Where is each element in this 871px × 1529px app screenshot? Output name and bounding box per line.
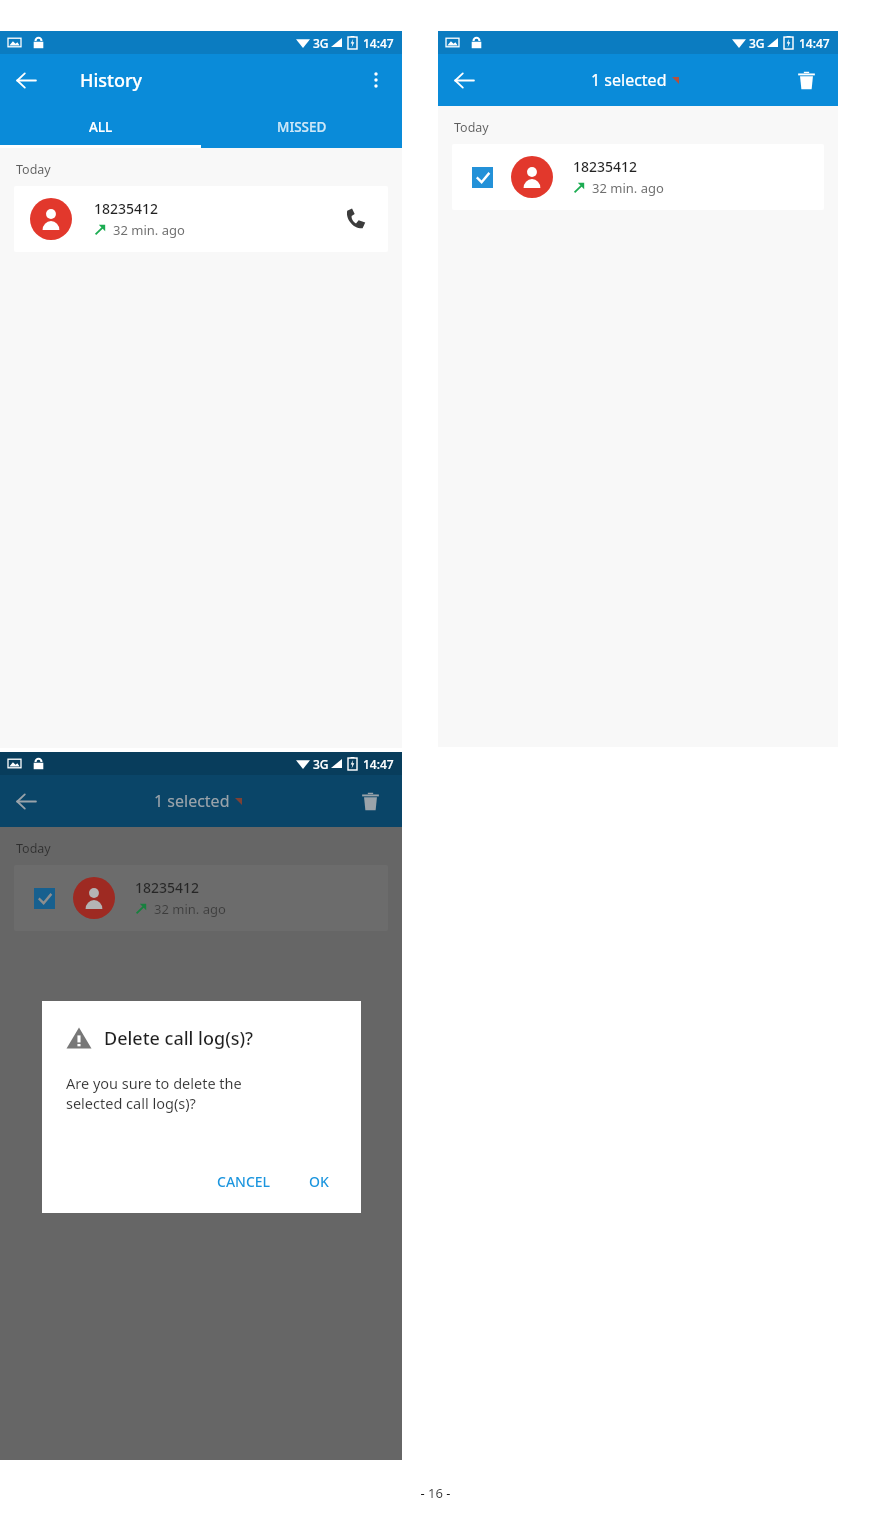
button[interactable]: ALL: [0, 106, 201, 148]
staticText: 14:47: [799, 35, 830, 51]
staticText: Delete call log(s)?: [104, 1026, 254, 1051]
staticText: 32 min. ago: [154, 900, 226, 918]
staticText: 3G: [313, 756, 329, 772]
staticText: CANCEL: [217, 1172, 271, 1191]
button[interactable]: Call: [332, 195, 380, 243]
staticText: 3G: [749, 35, 765, 51]
staticText: 1 selected: [591, 69, 667, 91]
staticText: 3G: [313, 35, 329, 51]
staticText: 32 min. ago: [113, 221, 185, 239]
button[interactable]: Selected: [452, 144, 824, 210]
button[interactable]: Back: [0, 775, 52, 827]
button[interactable]: 1 selected: [154, 790, 242, 812]
button[interactable]: Delete: [344, 775, 396, 827]
staticText: 14:47: [363, 756, 394, 772]
button[interactable]: 18235412: [14, 186, 388, 252]
button[interactable]: Selected: [472, 167, 493, 188]
button[interactable]: MISSED: [201, 106, 402, 148]
staticText: MISSED: [277, 118, 327, 136]
button[interactable]: Delete: [780, 54, 832, 106]
staticText: 14:47: [363, 35, 394, 51]
staticText: Today: [454, 119, 489, 136]
staticText: 18235412: [135, 878, 200, 897]
staticText: OK: [309, 1172, 329, 1191]
button[interactable]: More options: [350, 54, 402, 106]
staticText: - 16 -: [420, 1484, 451, 1502]
staticText: Are you sure to delete the selected call…: [66, 1073, 242, 1114]
button[interactable]: Selected: [34, 888, 55, 909]
button[interactable]: Back: [0, 54, 52, 106]
button[interactable]: Back: [438, 54, 490, 106]
staticText: ALL: [89, 118, 113, 136]
staticText: History: [80, 68, 143, 93]
button[interactable]: CANCEL: [209, 1164, 279, 1199]
staticText: 32 min. ago: [592, 179, 664, 197]
staticText: 1 selected: [154, 790, 230, 812]
staticText: Today: [16, 840, 51, 857]
button[interactable]: Selected: [14, 865, 388, 931]
button[interactable]: 1 selected: [591, 69, 679, 91]
staticText: 18235412: [573, 157, 638, 176]
button[interactable]: OK: [301, 1164, 337, 1199]
staticText: 18235412: [94, 199, 159, 218]
staticText: Today: [16, 161, 51, 178]
